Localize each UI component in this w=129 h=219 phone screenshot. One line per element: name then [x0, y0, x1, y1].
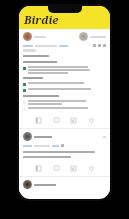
button[interactable]: Profile photo [23, 32, 32, 41]
button[interactable]: Bookmark [33, 163, 43, 173]
button[interactable]: Repost [68, 163, 78, 173]
button[interactable]: Comment [51, 115, 61, 125]
button[interactable]: Profile photo [19, 29, 110, 128]
button[interactable] [23, 88, 106, 92]
button[interactable]: Comment [51, 163, 61, 173]
button[interactable] [23, 100, 106, 105]
button[interactable]: Profile photo [23, 132, 32, 141]
button[interactable]: Profile photo [23, 180, 32, 189]
button[interactable]: Profile photo [79, 32, 88, 41]
button[interactable]: Repost [68, 115, 78, 125]
button[interactable]: Bookmark [33, 115, 43, 125]
button[interactable]: Profile photo [19, 129, 110, 176]
button[interactable] [23, 82, 106, 86]
staticText: Birdie [24, 12, 59, 27]
button[interactable]: Profile photo [19, 177, 110, 192]
button[interactable] [23, 107, 106, 111]
button[interactable]: Like [86, 163, 96, 173]
button[interactable] [23, 66, 106, 74]
button[interactable]: Like [86, 115, 96, 125]
